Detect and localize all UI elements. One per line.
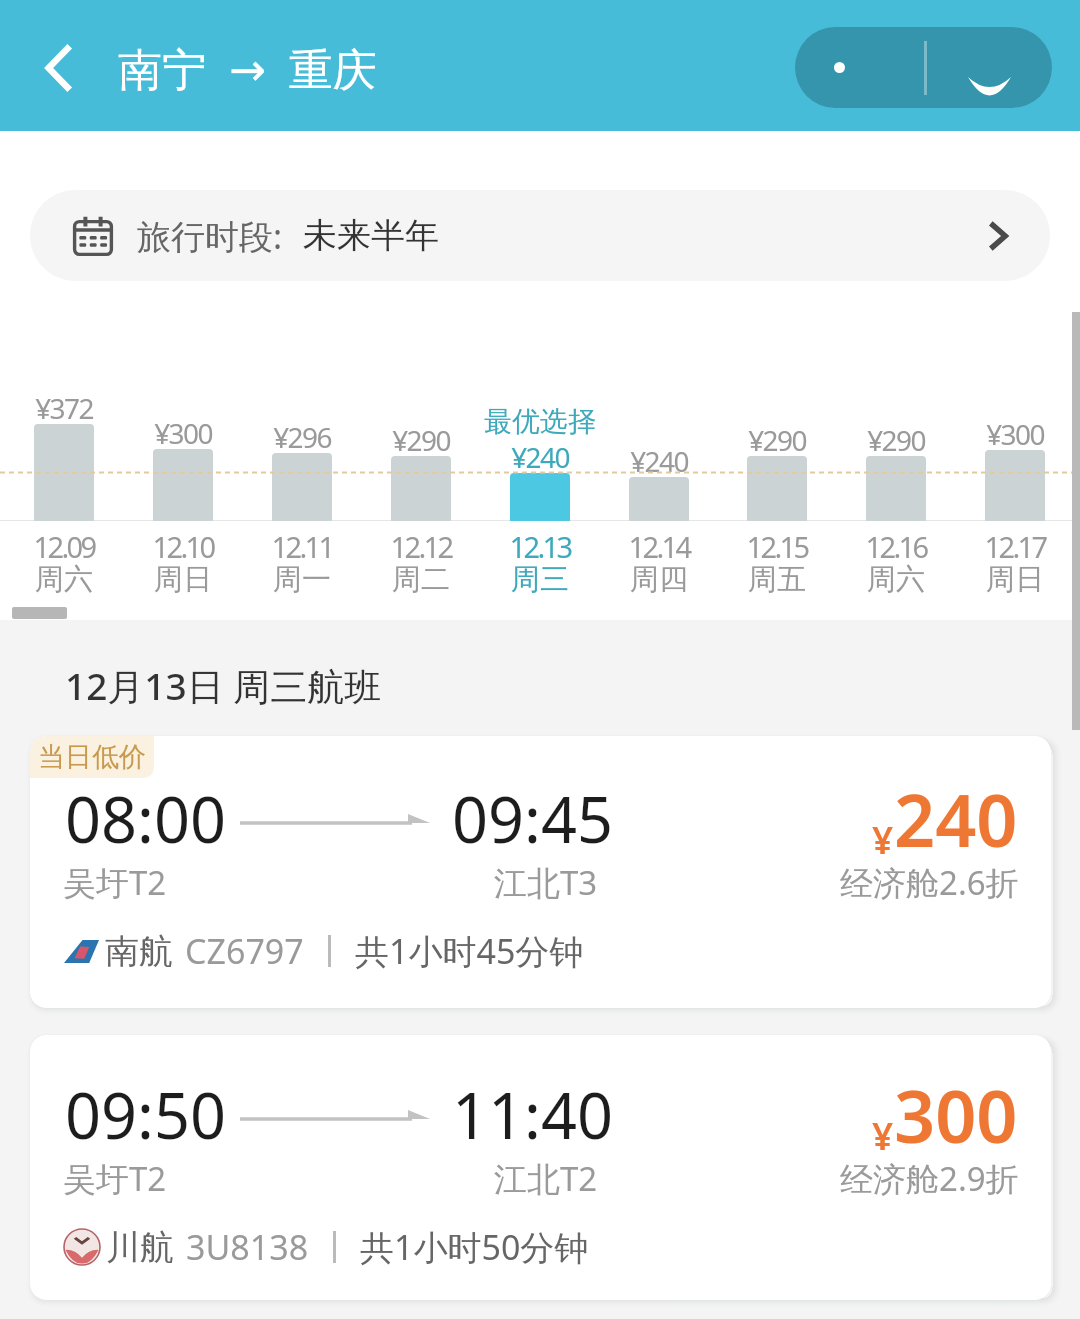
button[interactable] [510,473,570,521]
staticText: ¥ [872,814,894,864]
staticText: 当日低价 [38,740,146,774]
staticText: 共1小时50分钟 [360,1224,589,1270]
staticText: 南航 [105,930,173,973]
button[interactable] [985,450,1045,521]
staticText: 经济舱2.9折 [840,1156,1019,1201]
staticText: 12.10 [103,527,263,566]
staticText: 川航 [106,1226,174,1269]
staticText: 12.13 [460,527,620,566]
button[interactable] [391,456,451,521]
button[interactable]: 09:50 [30,1035,1051,1300]
staticText: 旅行时段: [137,213,283,259]
staticText: 吴圩T2 [63,1156,167,1201]
staticText: 周五 [697,561,857,598]
button[interactable] [34,424,94,521]
button[interactable] [747,456,807,521]
staticText: 周日 [935,561,1080,598]
staticText: 周一 [222,561,382,598]
staticText: 09:50 [65,1072,227,1158]
staticText: 周六 [0,561,144,598]
staticText: 经济舱2.6折 [840,860,1019,905]
staticText: ¥296 [222,418,382,456]
staticText: 吴圩T2 [63,860,167,905]
staticText: 12月13日 周三航班 [65,660,382,711]
staticText: 12.15 [697,527,857,566]
staticText: 周二 [341,561,501,598]
staticText: ¥ [872,1110,894,1160]
staticText: 3U8138 [186,1224,309,1270]
staticText: 共1小时45分钟 [355,928,584,974]
staticText: ¥300 [103,414,263,452]
staticText: 12.17 [935,527,1080,566]
staticText: 11:40 [452,1072,614,1158]
staticText: 未来半年 [303,214,439,257]
staticText: 12.16 [816,527,976,566]
staticText: ¥372 [0,389,144,427]
staticText: 12.11 [222,527,382,566]
button[interactable]: 旅行时段: [30,190,1050,281]
staticText: 08:00 [65,776,227,862]
staticText: 12.09 [0,527,144,566]
staticText: 09:45 [452,776,614,862]
staticText: ¥240 [579,442,739,480]
staticText: 江北T3 [494,860,598,905]
staticText: 240 [894,770,1018,868]
staticText: CZ6797 [185,928,304,974]
staticText: 南宁 → 重庆 [118,38,377,98]
button[interactable] [866,456,926,521]
staticText: ¥290 [816,421,976,459]
button[interactable]: Back [23,36,87,100]
staticText: 周日 [103,561,263,598]
staticText: 12.14 [579,527,739,566]
staticText: 江北T2 [494,1156,598,1201]
button[interactable]: 当日低价 [30,736,1051,1008]
staticText: 最优选择 [460,404,620,439]
staticText: 周四 [579,561,739,598]
staticText: ¥300 [935,415,1080,453]
staticText: ¥290 [341,421,501,459]
staticText: 300 [894,1066,1018,1164]
staticText: ¥290 [697,421,857,459]
button[interactable] [272,453,332,521]
button[interactable] [153,449,213,521]
staticText: 周三 [460,561,620,598]
staticText: 12.12 [341,527,501,566]
staticText: 周六 [816,561,976,598]
button[interactable]: Menu [795,27,1052,108]
staticText: ¥240 [460,438,620,476]
